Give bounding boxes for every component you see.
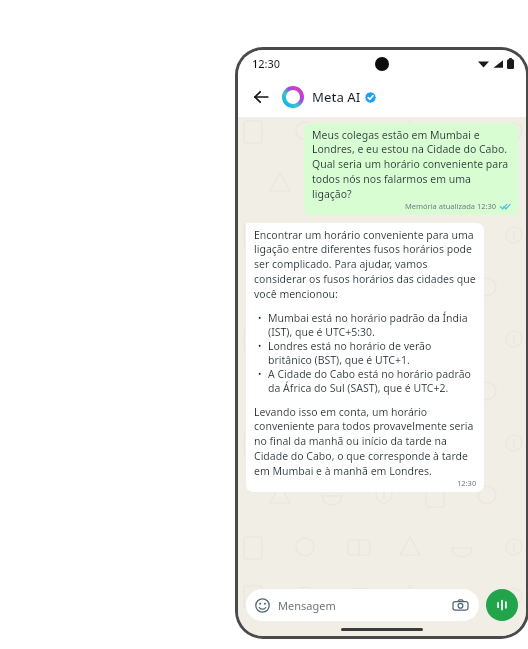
staticText: • xyxy=(258,339,262,351)
staticText: Memória atualizada 12:30 xyxy=(405,201,497,211)
button[interactable]: Encontrar um horário conveniente para um… xyxy=(246,223,484,492)
staticText: Meta AI xyxy=(312,88,361,106)
staticText: • xyxy=(258,311,262,323)
button[interactable]: Meta AI xyxy=(312,88,376,106)
button[interactable]: Meus colegas estão em Mumbai e Londres, … xyxy=(304,123,518,215)
staticText: • xyxy=(258,367,262,379)
button[interactable]: Back xyxy=(248,84,274,110)
staticText: Levando isso em conta, um horário conven… xyxy=(254,405,477,478)
staticText: Mensagem xyxy=(278,598,336,613)
button[interactable]: Voice message xyxy=(486,589,518,621)
staticText: Londres está no horário de verão britâni… xyxy=(268,339,477,367)
staticText: Meus colegas estão em Mumbai e Londres, … xyxy=(312,128,511,201)
staticText: Mumbai está no horário padrão da Índia (… xyxy=(268,311,477,339)
staticText: Encontrar um horário conveniente para um… xyxy=(254,228,477,301)
button[interactable]: Camera xyxy=(450,595,470,615)
staticText: 12:30 xyxy=(252,56,281,71)
staticText: 12:30 xyxy=(457,478,477,488)
button[interactable]: Mensagem xyxy=(246,589,479,621)
staticText: A Cidade do Cabo está no horário padrão … xyxy=(268,367,477,395)
